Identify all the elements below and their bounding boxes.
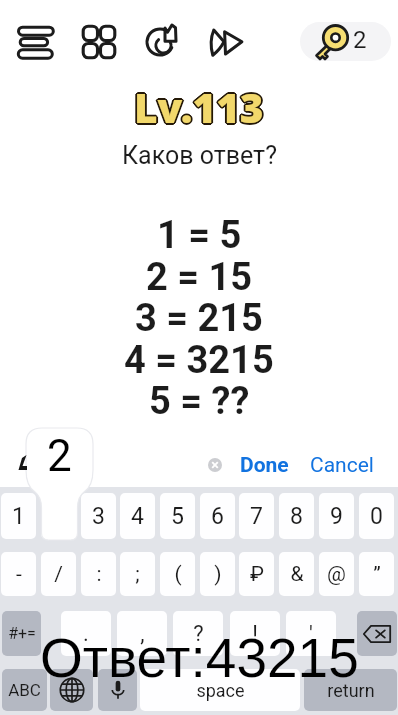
button[interactable]: (	[160, 552, 195, 596]
button[interactable]: 6	[200, 493, 235, 539]
button[interactable]: ”	[359, 552, 394, 596]
button[interactable]: 4	[120, 493, 155, 539]
button[interactable]: ?	[173, 611, 223, 656]
staticText: Lv.113	[133, 81, 263, 136]
staticText: ”	[373, 562, 381, 587]
staticText: Lv.113	[133, 79, 263, 134]
staticText: ,	[140, 621, 145, 647]
staticText: !	[252, 621, 258, 647]
staticText: 8	[290, 503, 303, 530]
staticText: ABC	[8, 680, 41, 700]
staticText: Lv.113	[135, 79, 265, 134]
button[interactable]: .	[61, 611, 111, 656]
button[interactable]: '	[286, 611, 336, 656]
staticText: 6	[211, 503, 224, 530]
staticText: Lv.113	[136, 80, 266, 135]
button[interactable]: !	[230, 611, 280, 656]
staticText: Lv.113	[135, 81, 265, 136]
button[interactable]: &	[279, 552, 314, 596]
button[interactable]: Change language	[50, 669, 93, 711]
button[interactable]: ,	[117, 611, 167, 656]
staticText: 3 = 215	[135, 296, 263, 338]
staticText: &	[290, 562, 304, 587]
button[interactable]: Skip	[204, 20, 248, 64]
staticText: 5 = ??	[149, 379, 250, 421]
button[interactable]: Clear text	[202, 452, 228, 478]
button[interactable]: ;	[120, 552, 155, 596]
button[interactable]: )	[200, 552, 235, 596]
staticText: :	[96, 562, 102, 587]
staticText: 0	[370, 503, 383, 530]
staticText: Lv.113	[133, 81, 263, 136]
staticText: Lv.113	[134, 78, 264, 133]
button[interactable]: All levels	[77, 20, 121, 64]
staticText: '	[309, 621, 313, 647]
button[interactable]: 0	[359, 493, 394, 539]
button[interactable]: Hints: 2	[300, 22, 391, 61]
button[interactable]: return	[304, 669, 397, 711]
staticText: Cancel	[310, 453, 374, 478]
staticText: @	[327, 562, 346, 587]
button[interactable]: ABC	[2, 669, 47, 711]
staticText: ;	[135, 562, 140, 587]
staticText: 9	[330, 503, 343, 530]
staticText: Lv.113	[134, 82, 264, 137]
staticText: (	[174, 562, 182, 587]
staticText: 2	[47, 430, 72, 474]
button[interactable]: /	[41, 552, 76, 596]
staticText: space	[196, 680, 245, 701]
staticText: 1 = 5	[157, 213, 242, 255]
staticText: 7	[250, 503, 263, 530]
staticText: ?	[193, 621, 204, 647]
button[interactable]: Cancel	[306, 452, 378, 478]
staticText: Lv.113	[134, 80, 264, 135]
button[interactable]: Backspace	[357, 611, 397, 656]
staticText: Lv.113	[135, 79, 265, 134]
button[interactable]: 5	[160, 493, 195, 539]
button[interactable]: :	[81, 552, 116, 596]
button[interactable]: 1	[1, 493, 36, 539]
staticText: 1	[12, 503, 25, 530]
staticText: -	[16, 562, 22, 587]
staticText: Ответ:43215	[40, 627, 359, 688]
button[interactable]: @	[319, 552, 354, 596]
button[interactable]: -	[1, 552, 36, 596]
staticText: Lv.113	[132, 80, 262, 135]
staticText: Lv.113	[135, 81, 265, 136]
staticText: Каков ответ?	[122, 141, 277, 170]
staticText: Lv.113	[133, 79, 263, 134]
button[interactable]: space	[140, 669, 300, 711]
button[interactable]: Levels	[14, 20, 58, 64]
staticText: 2	[353, 26, 367, 54]
button[interactable]: 8	[279, 493, 314, 539]
staticText: Done	[240, 453, 289, 478]
button[interactable]: Restart	[140, 20, 184, 64]
button[interactable]: 9	[319, 493, 354, 539]
staticText: 4	[131, 503, 144, 530]
staticText: Lv.113	[135, 81, 265, 136]
staticText: 2 = 15	[146, 255, 253, 297]
staticText: )	[214, 562, 222, 587]
button[interactable]: Done	[236, 452, 293, 478]
staticText: .	[83, 621, 89, 647]
staticText: Lv.113	[133, 81, 263, 136]
button[interactable]: ₽	[239, 552, 274, 596]
button[interactable]: 3	[81, 493, 116, 539]
staticText: Lv.113	[135, 79, 265, 134]
staticText: 5	[171, 503, 184, 530]
staticText: 4 = 3215	[124, 338, 274, 380]
button[interactable]: #+=	[2, 611, 41, 656]
button[interactable]: 7	[239, 493, 274, 539]
staticText: /	[54, 562, 63, 587]
staticText: ₽	[250, 562, 264, 587]
button[interactable]: Dictation	[98, 669, 137, 711]
button[interactable]: 2	[41, 493, 76, 539]
staticText: #+=	[8, 624, 36, 643]
staticText: Lv.113	[133, 79, 263, 134]
staticText: return	[327, 680, 375, 701]
staticText: 3	[92, 503, 105, 530]
